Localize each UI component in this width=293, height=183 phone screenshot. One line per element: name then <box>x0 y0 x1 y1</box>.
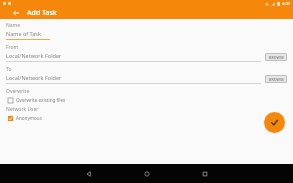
staticText: Network User <box>6 106 39 113</box>
button[interactable]: Local/Network Folder <box>6 74 261 84</box>
staticText: Anonymous <box>16 115 42 121</box>
button[interactable]: Anonymous <box>8 115 42 121</box>
button[interactable]: Recent apps <box>187 164 223 183</box>
staticText: 4:09 <box>282 1 290 6</box>
staticText: Overwrite <box>6 88 30 95</box>
staticText: From <box>6 44 19 51</box>
staticText: Overwrite existing files <box>16 97 66 103</box>
button[interactable]: Back <box>71 164 107 183</box>
staticText: BROWSE <box>269 55 284 60</box>
button[interactable]: Overwrite existing files <box>8 97 66 103</box>
staticText: Add Task <box>27 8 57 18</box>
button[interactable]: BROWSE <box>265 53 287 61</box>
button[interactable]: Home <box>129 164 165 183</box>
staticText: BROWSE <box>269 77 284 82</box>
button[interactable]: BROWSE <box>265 75 287 83</box>
staticText: Local/Network Folder <box>6 74 62 81</box>
staticText: Name of Task <box>6 30 41 37</box>
staticText: To <box>6 66 12 73</box>
staticText: Local/Network Folder <box>6 52 62 59</box>
button[interactable]: Back <box>10 7 22 19</box>
button[interactable]: Local/Network Folder <box>6 52 261 62</box>
button[interactable]: Save task <box>264 112 285 133</box>
staticText: Name <box>6 22 21 29</box>
button[interactable]: Name of Task <box>6 30 287 40</box>
